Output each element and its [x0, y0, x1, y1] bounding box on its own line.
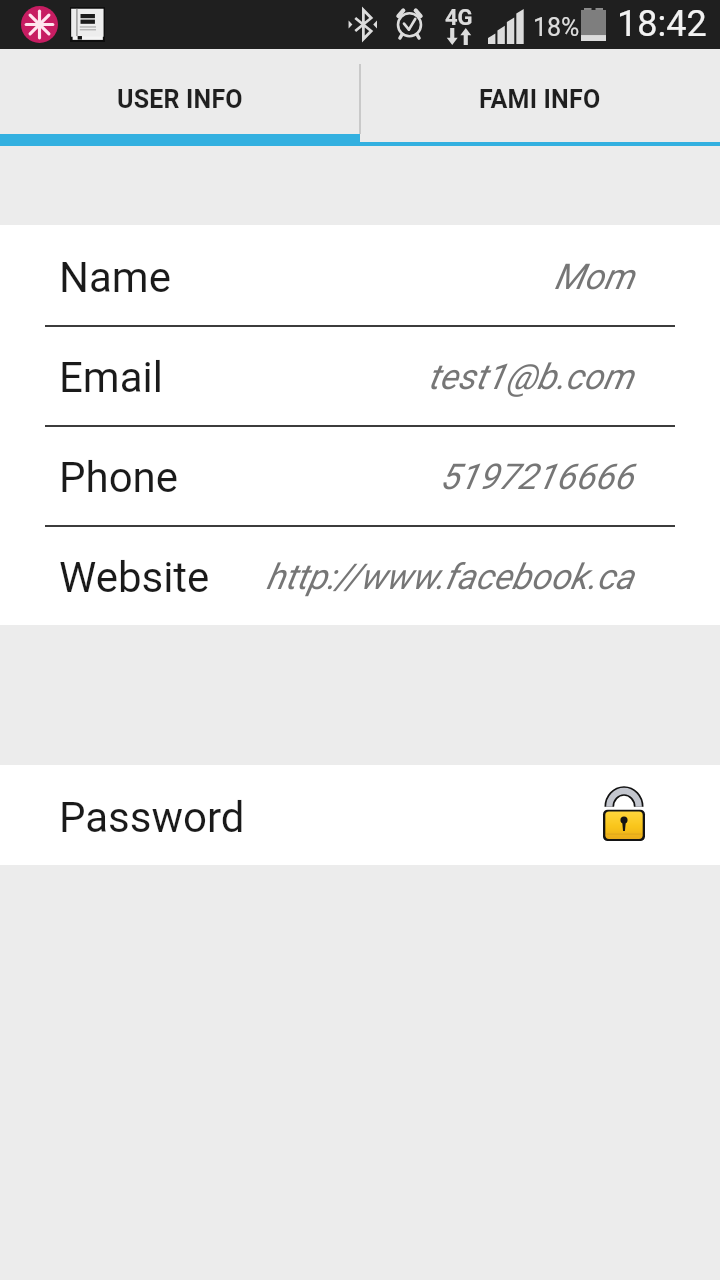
staticText: http://www.facebook.ca — [266, 556, 634, 598]
staticText: test1@b.com — [428, 356, 634, 398]
staticText: Name — [59, 253, 171, 302]
other: Password is locked — [603, 790, 645, 841]
staticText: Password — [59, 793, 245, 842]
button[interactable]: Name — [0, 225, 720, 325]
staticText: 18% — [533, 13, 580, 42]
staticText: FAMI INFO — [479, 85, 601, 114]
staticText: 4G — [445, 5, 473, 31]
staticText: USER INFO — [117, 85, 243, 114]
button[interactable]: Phone — [0, 425, 720, 525]
staticText: Mom — [554, 256, 634, 298]
button[interactable]: Password — [0, 765, 720, 865]
staticText: 18:42 — [617, 3, 707, 45]
button[interactable]: USER INFO — [0, 49, 360, 134]
button[interactable]: Email — [0, 325, 720, 425]
staticText: 5197216666 — [440, 456, 634, 498]
staticText: Phone — [59, 453, 179, 502]
button[interactable]: Website — [0, 525, 720, 625]
staticText: Email — [59, 353, 163, 402]
button[interactable]: FAMI INFO — [360, 49, 720, 134]
staticText: Website — [59, 553, 210, 602]
